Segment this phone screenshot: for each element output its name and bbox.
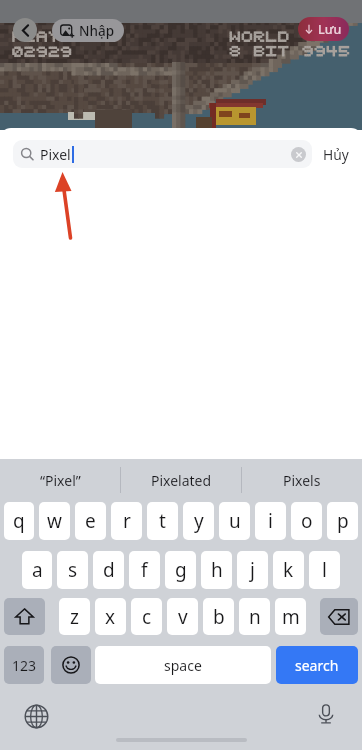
button[interactable]: Dictation	[314, 702, 338, 726]
staticText: i	[268, 508, 273, 534]
staticText: c	[142, 604, 152, 630]
button[interactable]: v	[167, 598, 198, 635]
staticText: s	[68, 557, 78, 583]
staticText: Pixelated	[151, 471, 212, 490]
button[interactable]: a	[22, 551, 52, 589]
staticText: w	[47, 508, 62, 534]
button[interactable]: Pixels	[242, 461, 362, 499]
staticText: x	[105, 604, 116, 630]
staticText: j	[250, 557, 255, 583]
button[interactable]: i	[255, 502, 286, 540]
staticText: z	[70, 604, 79, 630]
button[interactable]: x	[95, 598, 126, 635]
staticText: search	[295, 656, 339, 675]
staticText: v	[178, 604, 188, 630]
button[interactable]: Change keyboard	[24, 704, 49, 729]
staticText: o	[301, 508, 313, 534]
button[interactable]: Lưu	[298, 17, 349, 41]
button[interactable]: Emoji	[51, 646, 91, 684]
staticText: k	[283, 557, 294, 583]
button[interactable]: search	[276, 646, 358, 684]
button[interactable]: s	[57, 551, 88, 589]
button[interactable]: u	[219, 502, 250, 540]
staticText: a	[32, 557, 43, 583]
button[interactable]: f	[129, 551, 160, 589]
button[interactable]: Backspace	[320, 598, 358, 635]
staticText: y	[194, 508, 204, 534]
staticText: Hủy	[323, 145, 349, 164]
button[interactable]: h	[201, 551, 232, 589]
staticText: f	[141, 557, 148, 583]
staticText: t	[159, 508, 166, 534]
button[interactable]: “Pixel”	[0, 461, 120, 499]
button[interactable]: y	[183, 502, 214, 540]
button[interactable]: c	[131, 598, 162, 635]
button[interactable]: k	[273, 551, 304, 589]
staticText: p	[337, 508, 349, 534]
button[interactable]: Pixel	[13, 140, 312, 168]
button[interactable]: Clear text	[291, 147, 306, 162]
staticText: r	[123, 508, 131, 534]
staticText: m	[282, 604, 300, 630]
button[interactable]: Nhập	[52, 19, 124, 42]
staticText: Pixels	[283, 471, 321, 490]
button[interactable]: w	[39, 502, 70, 540]
button[interactable]: 123	[4, 646, 44, 684]
staticText: n	[249, 604, 261, 630]
staticText: space	[164, 656, 202, 675]
button[interactable]: l	[309, 551, 340, 589]
button[interactable]: Hủy	[316, 140, 356, 168]
button[interactable]: p	[327, 502, 358, 540]
button[interactable]: Back	[13, 18, 37, 42]
button[interactable]: space	[95, 646, 271, 684]
button[interactable]: o	[291, 502, 322, 540]
staticText: Pixel	[40, 145, 71, 164]
staticText: h	[211, 557, 223, 583]
staticText: q	[13, 508, 25, 534]
staticText: u	[229, 508, 241, 534]
button[interactable]: e	[75, 502, 106, 540]
button[interactable]: Shift	[4, 598, 45, 635]
staticText: “Pixel”	[40, 471, 81, 490]
button[interactable]: j	[237, 551, 268, 589]
staticText: Lưu	[318, 21, 342, 38]
staticText: b	[213, 604, 225, 630]
button[interactable]: z	[59, 598, 90, 635]
staticText: e	[85, 508, 96, 534]
button[interactable]: Pixelated	[121, 461, 241, 499]
staticText: 123	[12, 656, 37, 675]
staticText: l	[322, 557, 327, 583]
button[interactable]: q	[4, 502, 34, 540]
staticText: g	[175, 557, 187, 583]
staticText: d	[103, 557, 115, 583]
button[interactable]: d	[93, 551, 124, 589]
button[interactable]: n	[239, 598, 270, 635]
button[interactable]: m	[275, 598, 306, 635]
button[interactable]: g	[165, 551, 196, 589]
button[interactable]: t	[147, 502, 178, 540]
button[interactable]: r	[111, 502, 142, 540]
staticText: Nhập	[79, 22, 115, 40]
button[interactable]: b	[203, 598, 234, 635]
